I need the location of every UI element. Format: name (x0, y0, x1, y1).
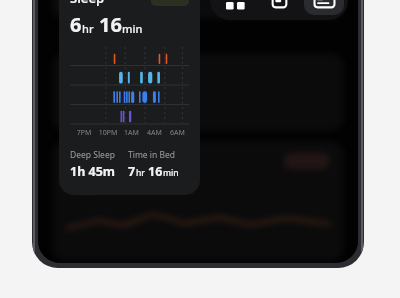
staticText: 7PM (72, 128, 96, 138)
staticText: min (122, 21, 143, 36)
staticText: 10PM (96, 128, 120, 138)
staticText: Deep Sleep (70, 149, 115, 161)
staticText: hr (82, 21, 94, 36)
staticText: 16 (99, 11, 122, 38)
staticText: 16 (148, 163, 163, 180)
staticText: hr (136, 167, 145, 179)
staticText: min (163, 167, 179, 179)
staticText: 6AM (166, 128, 189, 138)
staticText: 1h 45m (70, 163, 116, 180)
button[interactable]: Sleep (59, 0, 200, 195)
staticText: 1AM (120, 128, 143, 138)
staticText: 4AM (143, 128, 166, 138)
button[interactable]: Compact card layout (259, 0, 299, 15)
button[interactable]: Wide card layout (304, 0, 344, 15)
staticText: Sleep (70, 0, 105, 7)
staticText: 6 (70, 11, 82, 38)
staticText: Time in Bed (128, 149, 176, 161)
button[interactable]: Grid layout (215, 0, 255, 15)
button[interactable]: GOOD (151, 0, 189, 6)
staticText: 7 (128, 163, 136, 180)
